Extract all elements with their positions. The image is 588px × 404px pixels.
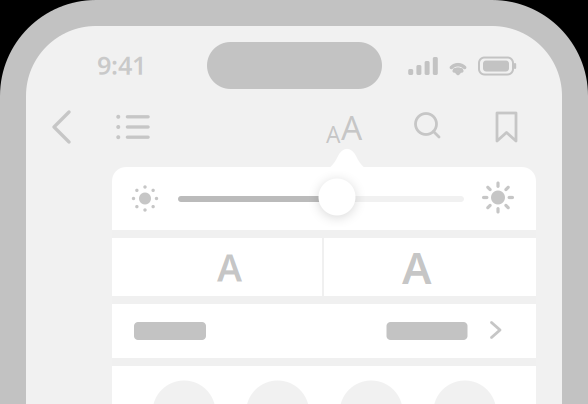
button[interactable]: Increase text size	[0, 0, 588, 404]
button[interactable]: Themes and settings	[0, 0, 588, 404]
button[interactable]: Back	[0, 0, 588, 404]
staticText: 9:41	[97, 48, 146, 82]
button[interactable]: Theme 3	[0, 0, 588, 404]
staticText: A	[341, 105, 362, 149]
button[interactable]: Theme 4	[0, 0, 588, 404]
staticText: A	[326, 119, 340, 149]
staticText: A	[402, 238, 432, 296]
staticText: A	[217, 242, 242, 292]
button[interactable]: Decrease text size	[0, 0, 588, 404]
button[interactable]: Search	[0, 0, 588, 404]
button[interactable]: Theme 2	[0, 0, 588, 404]
button[interactable]: Contents	[0, 0, 588, 404]
button[interactable]: Text size and appearance	[0, 0, 588, 404]
button[interactable]: Bookmark	[0, 0, 588, 404]
button[interactable]: Theme 1	[0, 0, 588, 404]
